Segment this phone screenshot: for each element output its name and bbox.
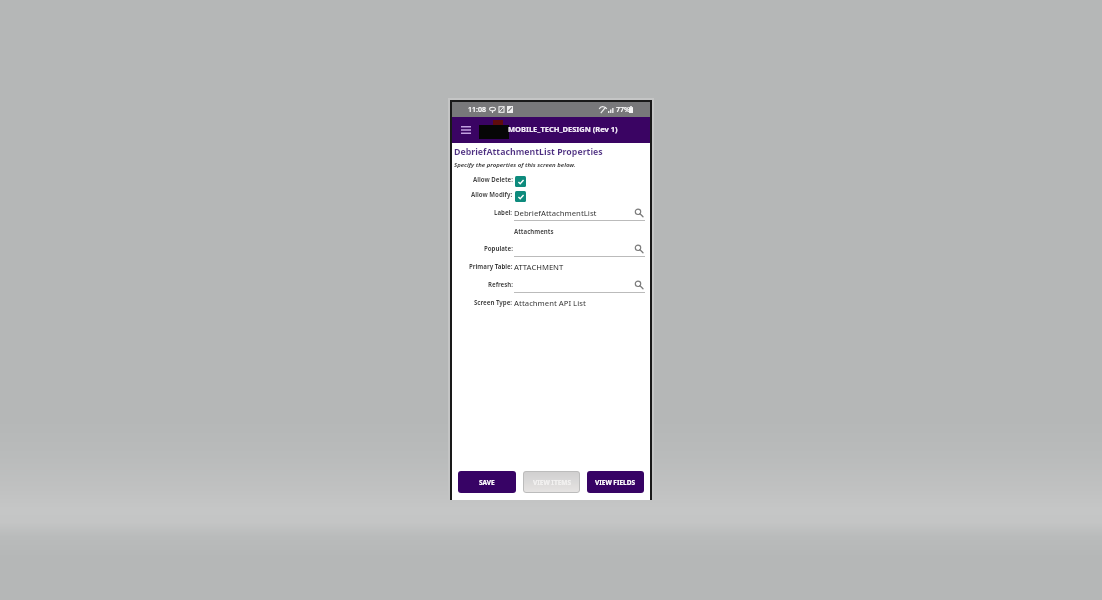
staticText: DebriefAttachmentList — [514, 208, 597, 218]
button[interactable]: Allow Modify: — [515, 191, 526, 202]
button[interactable]: Search Populate: — [632, 242, 645, 255]
staticText: Specify the properties of this screen be… — [454, 161, 576, 169]
staticText: Label: — [494, 208, 513, 216]
staticText: Screen Type: — [474, 298, 513, 306]
button[interactable]: Open navigation menu — [459, 123, 473, 137]
staticText: Refresh: — [488, 280, 513, 288]
button[interactable]: DebriefAttachmentList — [514, 206, 632, 220]
staticText: Attachment API List — [514, 298, 586, 308]
staticText: SAVE — [479, 478, 495, 487]
staticText: ATTACHMENT — [514, 262, 564, 272]
staticText: Attachments — [514, 227, 554, 235]
staticText: MOBILE_TECH_DESIGN (Rev 1) — [508, 124, 618, 134]
button[interactable]: VIEW ITEMS — [523, 471, 580, 493]
button[interactable]: Search Refresh: — [632, 278, 645, 291]
staticText: 11:08 — [468, 105, 486, 115]
staticText: Allow Modify: — [471, 190, 513, 198]
staticText: 77% — [616, 105, 630, 115]
button[interactable]: SAVE — [458, 471, 516, 493]
staticText: VIEW ITEMS — [533, 478, 571, 487]
staticText: Allow Delete: — [473, 175, 513, 183]
button[interactable]: Allow Delete: — [515, 176, 526, 187]
button[interactable]: Search Label: — [632, 206, 645, 219]
staticText: DebriefAttachmentList Properties — [454, 146, 603, 158]
button[interactable]: VIEW FIELDS — [587, 471, 644, 493]
staticText: Populate: — [484, 244, 513, 252]
staticText: VIEW FIELDS — [595, 478, 636, 487]
staticText: Primary Table: — [469, 262, 513, 270]
